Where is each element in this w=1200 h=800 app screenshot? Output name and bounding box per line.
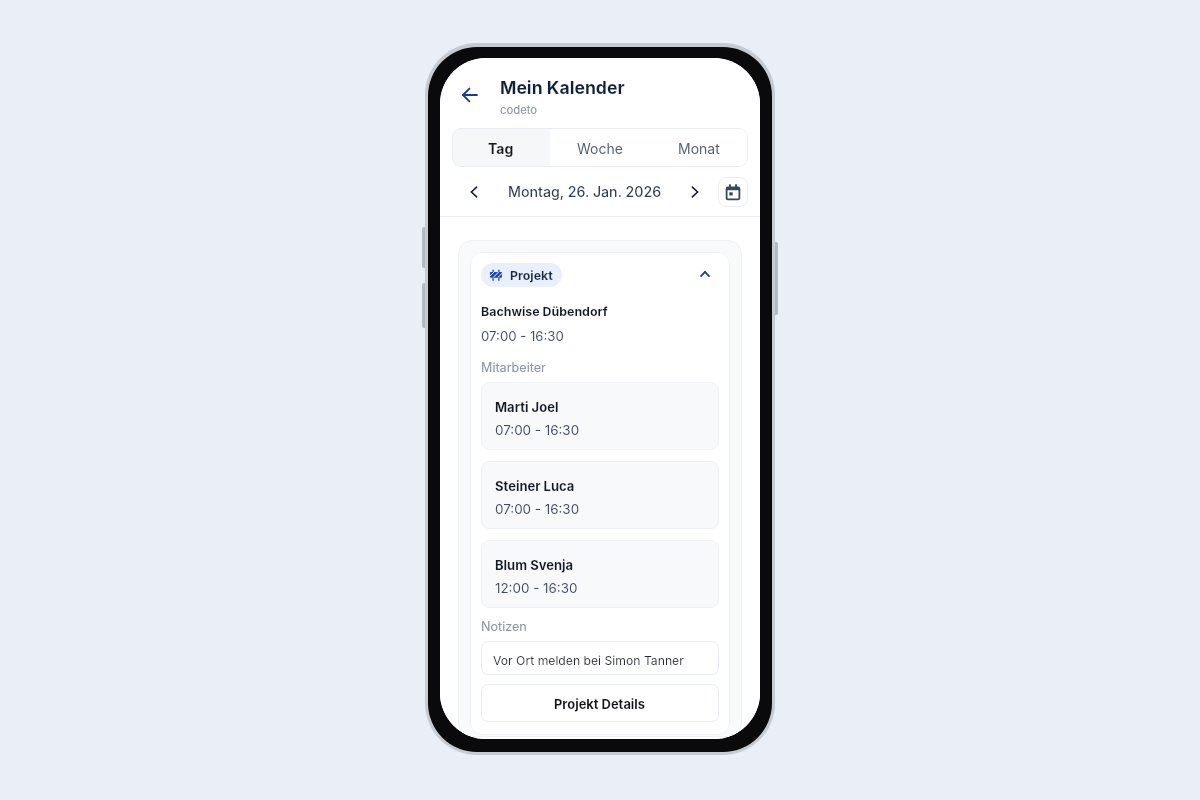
staticText: Bachwise Dübendorf xyxy=(481,304,608,319)
staticText: 07:00 - 16:30 xyxy=(481,328,564,344)
button[interactable]: Steiner Luca xyxy=(481,461,719,529)
staticText: Mein Kalender xyxy=(500,77,625,98)
staticText: Projekt Details xyxy=(554,697,646,713)
button[interactable]: Monat xyxy=(649,128,748,167)
staticText: Steiner Luca xyxy=(495,478,575,494)
button[interactable]: Collapse xyxy=(694,263,716,285)
button[interactable]: Projekt Details xyxy=(481,684,719,722)
button[interactable]: Marti Joel xyxy=(481,382,719,450)
staticText: 12:00 - 16:30 xyxy=(495,580,578,596)
staticText: Mitarbeiter xyxy=(481,360,546,375)
staticText: codeto xyxy=(500,103,538,117)
staticText: Marti Joel xyxy=(495,399,559,415)
staticText: 07:00 - 16:30 xyxy=(495,422,580,438)
staticText: Montag, 26. Jan. 2026 xyxy=(508,183,662,200)
staticText: 07:00 - 16:30 xyxy=(495,501,580,517)
button[interactable]: Open date picker xyxy=(718,177,748,207)
staticText: Vor Ort melden bei Simon Tanner xyxy=(493,653,684,668)
staticText: Blum Svenja xyxy=(495,557,574,573)
staticText: Tag xyxy=(488,140,514,157)
button[interactable]: Woche xyxy=(550,128,649,167)
staticText: Notizen xyxy=(481,619,527,634)
staticText: Projekt xyxy=(510,268,553,283)
staticText: Monat xyxy=(678,140,720,157)
button[interactable]: Projekt xyxy=(481,263,562,287)
button[interactable]: Previous day xyxy=(460,178,488,206)
button[interactable]: Blum Svenja xyxy=(481,540,719,608)
button[interactable]: Next day xyxy=(681,178,709,206)
staticText: Woche xyxy=(577,140,623,157)
button[interactable]: Back xyxy=(454,79,486,111)
button[interactable]: Tag xyxy=(452,128,550,167)
